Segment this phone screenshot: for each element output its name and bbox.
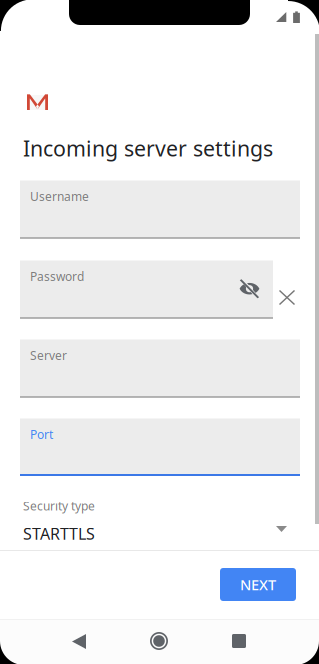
staticText: Port	[30, 426, 53, 442]
staticText: STARTTLS	[23, 523, 95, 544]
button[interactable]: Port	[0, 0, 280, 58]
staticText: Username	[30, 188, 89, 204]
staticText: Password	[30, 268, 84, 284]
staticText: Security type	[23, 498, 95, 514]
button[interactable]: NEXT	[0, 0, 76, 33]
button[interactable]: Security type	[0, 0, 319, 56]
button[interactable]: Password	[0, 0, 253, 58]
staticText: Incoming server settings	[23, 134, 273, 162]
staticText: Server	[30, 347, 67, 363]
button[interactable]: Server	[0, 0, 280, 58]
button[interactable]: Show password	[0, 0, 21, 17]
button[interactable]: Username	[0, 0, 280, 58]
button[interactable]: Clear password	[0, 0, 16, 15]
staticText: NEXT	[240, 575, 276, 594]
